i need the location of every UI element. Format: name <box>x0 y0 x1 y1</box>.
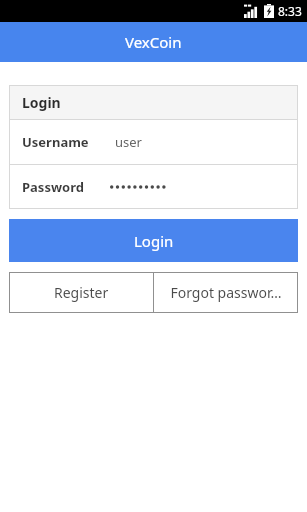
staticText: VexCoin <box>125 32 182 52</box>
button[interactable]: Register <box>9 272 153 313</box>
staticText: Login <box>134 231 174 251</box>
staticText: user <box>115 133 142 151</box>
button[interactable]: Login <box>9 219 298 262</box>
button[interactable]: Password <box>9 165 298 209</box>
staticText: Username <box>22 133 89 151</box>
staticText: Password <box>22 178 84 196</box>
button[interactable]: Username <box>9 120 298 164</box>
staticText: Login <box>22 93 61 112</box>
staticText: Forgot passwor… <box>170 283 282 302</box>
staticText: 8:33 <box>278 3 302 19</box>
staticText: Register <box>54 283 109 302</box>
button[interactable]: Forgot passwor… <box>154 272 298 313</box>
